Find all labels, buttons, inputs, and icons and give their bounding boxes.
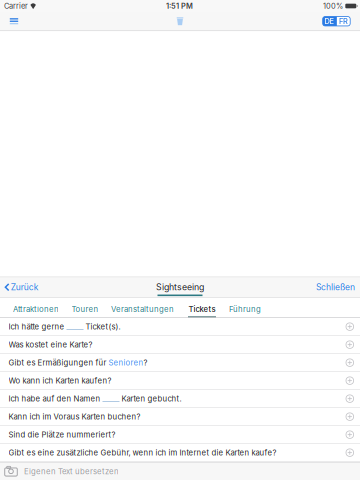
button[interactable]: Was kostet eine Karte?: [0, 336, 360, 354]
staticText: DE: [324, 17, 334, 26]
button[interactable]: Gibt es Ermäßigungen für: [0, 354, 360, 372]
button[interactable]: Veranstaltungen: [110, 298, 175, 318]
staticText: FR: [339, 17, 348, 26]
button[interactable]: Camera: [3, 465, 19, 478]
button[interactable]: Führung: [228, 298, 262, 318]
staticText: ?: [143, 358, 147, 367]
staticText: Führung: [229, 305, 261, 314]
staticText: Sind die Plätze nummeriert?: [8, 430, 115, 439]
staticText: Carrier: [4, 1, 28, 10]
staticText: Attraktionen: [13, 305, 59, 314]
button[interactable]: Tickets: [188, 298, 216, 318]
staticText: Tickets: [188, 305, 215, 314]
staticText: 100%: [323, 1, 343, 10]
button[interactable]: Zurück: [0, 277, 43, 298]
staticText: Veranstaltungen: [111, 305, 174, 314]
button[interactable]: Ich hätte gerne: [0, 318, 360, 336]
button[interactable]: Clear: [170, 12, 190, 30]
button[interactable]: Gibt es eine zusätzliche Gebühr, wenn ic…: [0, 444, 360, 462]
staticText: 1:51 PM: [166, 1, 193, 10]
button[interactable]: Ich habe auf den Namen: [0, 390, 360, 408]
staticText: Schließen: [316, 282, 355, 292]
staticText: Ich habe auf den Namen: [8, 394, 102, 403]
staticText: Eigenen Text übersetzen: [24, 467, 119, 476]
button[interactable]: Sind die Plätze nummeriert?: [0, 426, 360, 444]
button[interactable]: Menu: [3, 12, 25, 30]
staticText: Gibt es Ermäßigungen für: [8, 358, 108, 367]
staticText: Gibt es eine zusätzliche Gebühr, wenn ic…: [8, 448, 276, 457]
button[interactable]: FR: [337, 17, 350, 26]
staticText: Karten gebucht.: [119, 394, 181, 403]
staticText: Ticket(s).: [83, 322, 120, 331]
staticText: Senioren: [108, 358, 143, 367]
staticText: Zurück: [11, 282, 39, 292]
button[interactable]: Attraktionen: [14, 298, 58, 318]
button[interactable]: Wo kann ich Karten kaufen?: [0, 372, 360, 390]
staticText: Wo kann ich Karten kaufen?: [8, 376, 111, 385]
button[interactable]: Schließen: [311, 277, 360, 298]
button[interactable]: DE: [323, 17, 336, 26]
button[interactable]: Touren: [74, 298, 96, 318]
staticText: Kann ich im Voraus Karten buchen?: [8, 412, 140, 421]
staticText: Ich hätte gerne: [8, 322, 66, 331]
button[interactable]: Kann ich im Voraus Karten buchen?: [0, 408, 360, 426]
staticText: Sightseeing: [156, 282, 204, 292]
staticText: Was kostet eine Karte?: [8, 340, 92, 349]
staticText: Touren: [71, 305, 98, 314]
button[interactable]: DE: [323, 17, 350, 26]
